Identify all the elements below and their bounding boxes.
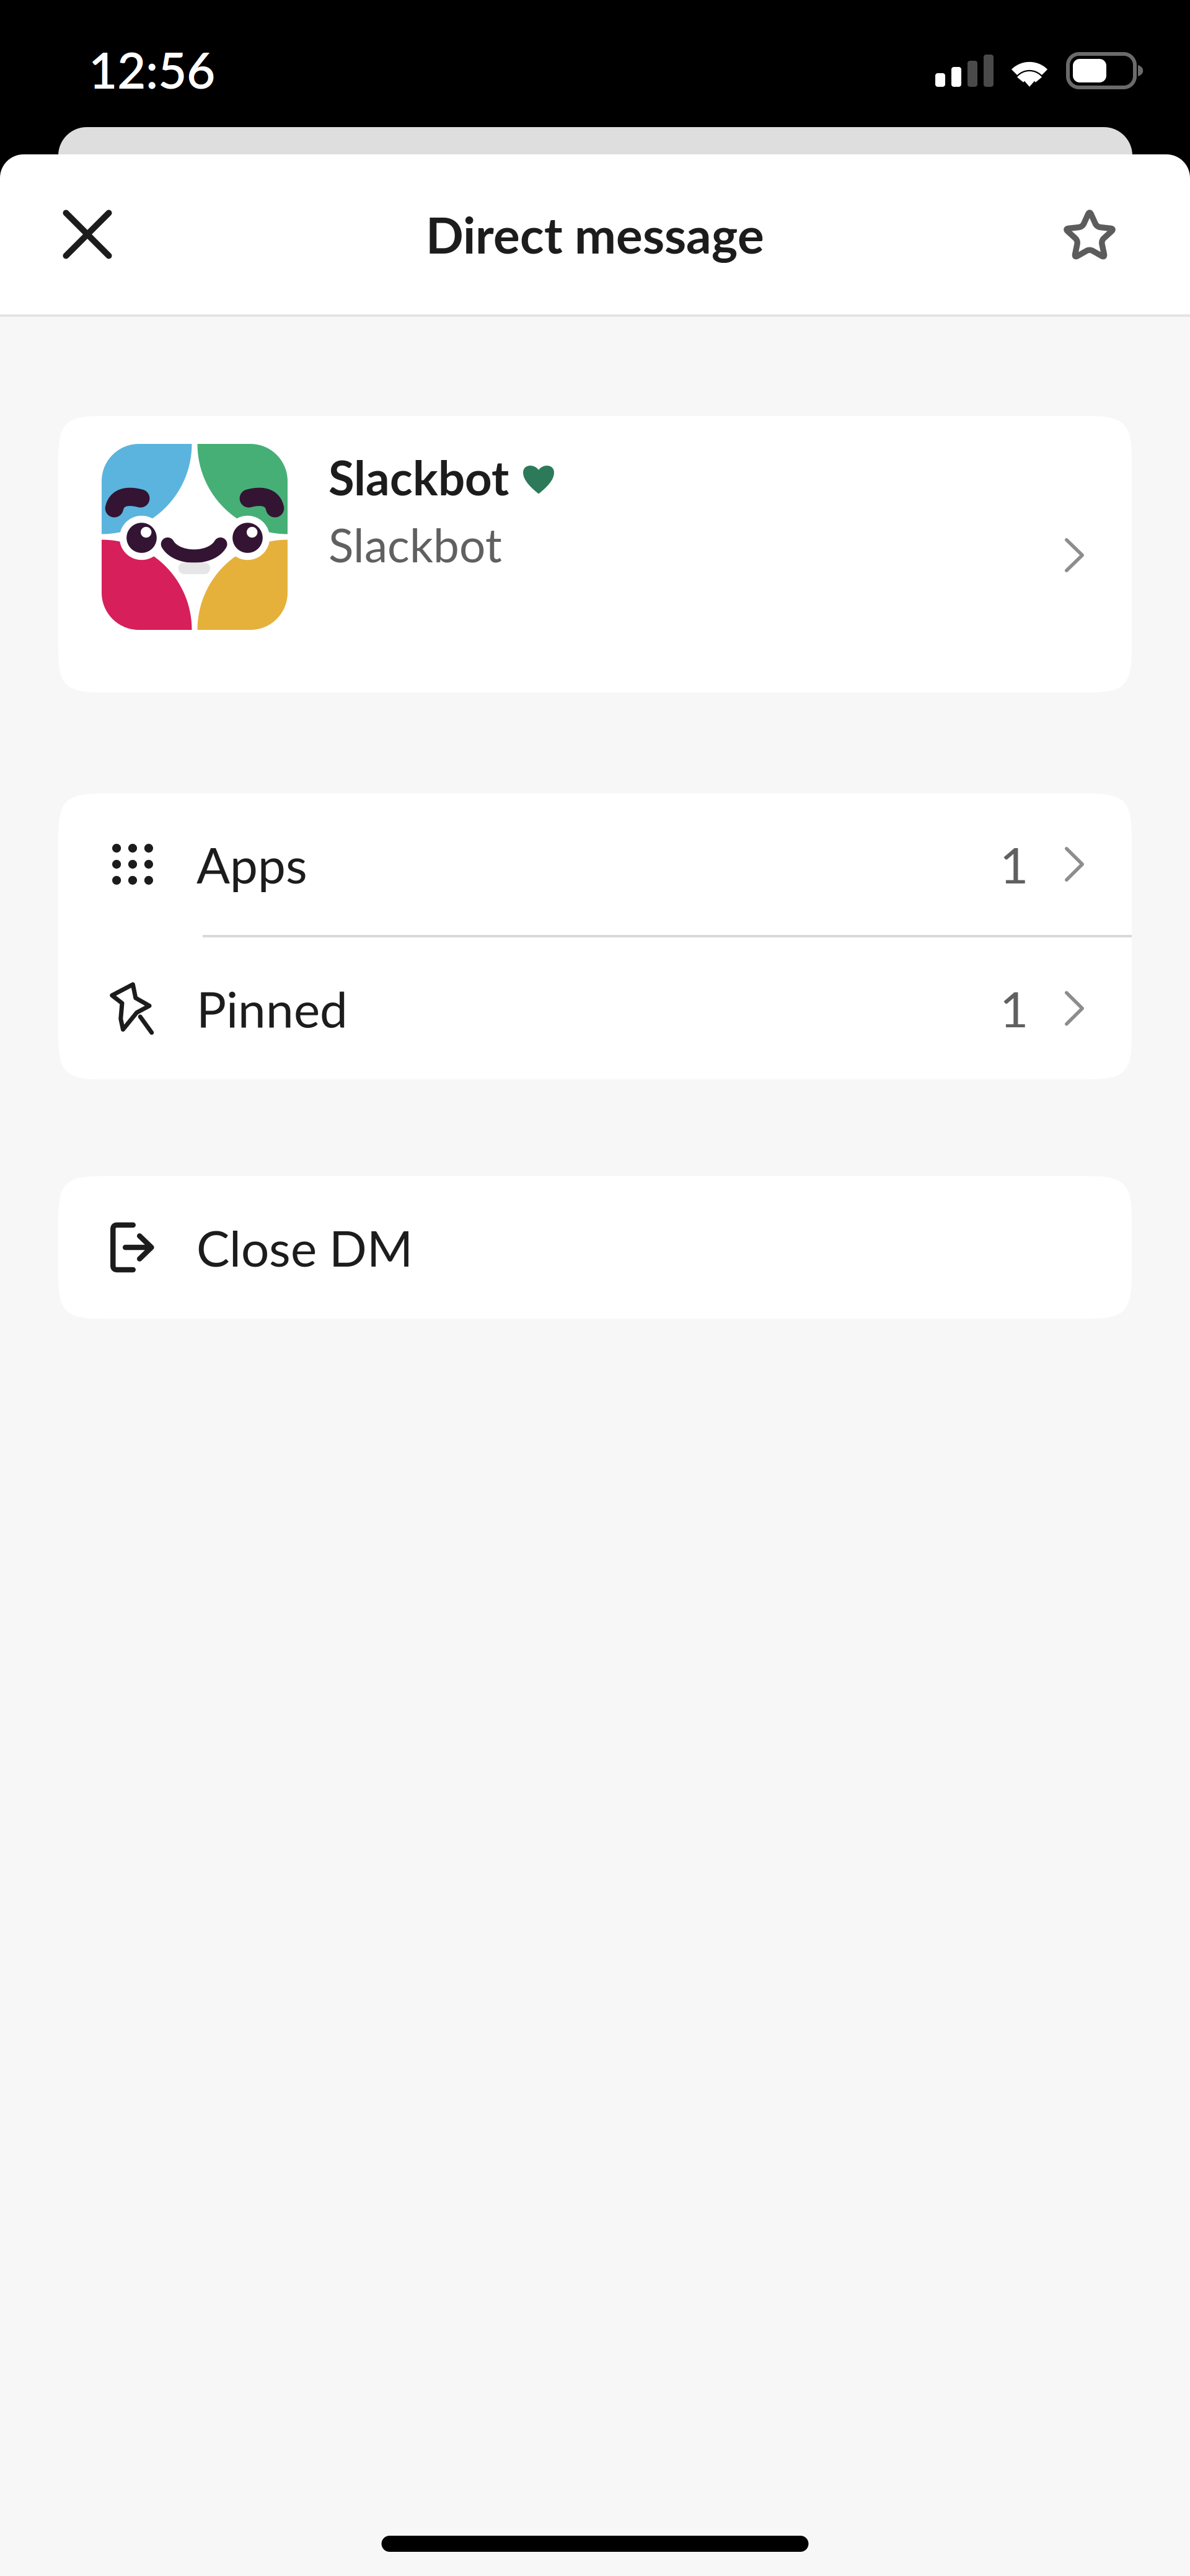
button[interactable]: Apps: [58, 794, 1132, 935]
button[interactable]: Slackbot: [58, 416, 1132, 693]
staticText: 1: [1000, 834, 1028, 894]
staticText: Slackbot: [328, 449, 509, 505]
staticText: Pinned: [196, 979, 348, 1038]
button[interactable]: Close: [35, 182, 140, 287]
button[interactable]: Pinned: [58, 937, 1132, 1079]
staticText: 12:56: [89, 40, 215, 99]
staticText: Apps: [196, 834, 307, 894]
staticText: Direct message: [426, 205, 764, 264]
button[interactable]: Close DM: [58, 1176, 1132, 1319]
button[interactable]: Star conversation: [1037, 182, 1142, 287]
staticText: Slackbot: [328, 517, 502, 572]
staticText: 1: [1000, 979, 1028, 1038]
staticText: Close DM: [196, 1218, 413, 1277]
